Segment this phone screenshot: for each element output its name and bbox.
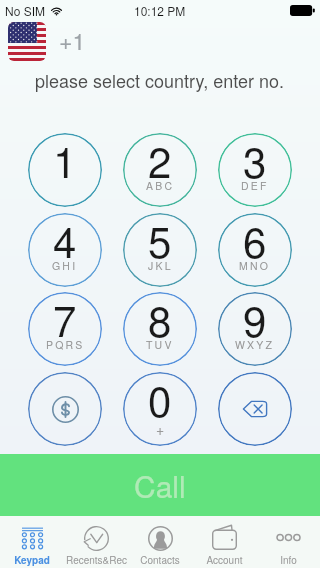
button[interactable]: 4 [28,213,102,287]
button[interactable]: 6 [218,213,292,287]
staticText: No SIM [5,2,46,19]
staticText: 0 [148,372,172,429]
button[interactable]: Call [0,454,320,516]
staticText: GHI [52,258,78,273]
staticText: 10:12 PM [134,2,186,19]
staticText: 5 [148,213,172,270]
staticText: 4 [53,213,77,270]
button[interactable]: 8 [123,292,197,366]
button[interactable]: 2 [123,133,197,207]
staticText: 9 [243,292,267,349]
staticText: WXYZ [235,337,275,352]
staticText: +1 [59,24,86,57]
staticText: 8 [148,292,172,349]
staticText: Keypad [14,553,50,567]
staticText: + [156,419,165,439]
button[interactable]: 5 [123,213,197,287]
staticText: Info [280,553,297,567]
staticText: 1 [53,133,77,190]
button[interactable]: del [218,372,292,446]
staticText: MNO [239,258,271,273]
staticText: JKL [148,258,173,273]
staticText: DEF [241,178,269,193]
button[interactable]: Contacts [128,516,192,568]
staticText: 3 [243,133,267,190]
staticText: 2 [148,133,172,190]
button[interactable]: Info [256,516,320,568]
staticText: Contacts [140,553,180,567]
button[interactable]: 3 [218,133,292,207]
staticText: 7 [53,292,77,349]
button[interactable]: +1 [0,21,86,61]
button[interactable]: 7 [28,292,102,366]
staticText: PQRS [46,337,85,352]
staticText: Call [134,464,186,507]
button[interactable]: 0 [123,372,197,446]
button[interactable]: Keypad [0,516,64,568]
staticText: Account [206,553,243,567]
staticText: 6 [243,213,267,270]
button[interactable]: Recents&Rec [64,516,128,568]
staticText: Recents&Rec [66,553,127,567]
button[interactable]: 9 [218,292,292,366]
button[interactable]: $ [28,372,102,446]
button[interactable]: Account [192,516,256,568]
staticText: ABC [146,178,175,193]
button[interactable]: 1 [28,133,102,207]
staticText: TUV [146,337,174,352]
staticText: please select country, enter no. [35,67,285,93]
